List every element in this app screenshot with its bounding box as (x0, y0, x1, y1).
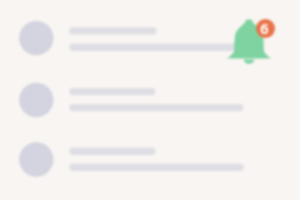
staticText: 6 (260, 19, 269, 37)
button[interactable]: Notification 2 (0, 70, 300, 130)
button[interactable]: Notifications (227, 16, 271, 68)
button[interactable]: 6 unread notifications (256, 19, 275, 38)
button[interactable]: Notification 1 (0, 8, 300, 68)
button[interactable]: Notification 3 (0, 130, 300, 190)
